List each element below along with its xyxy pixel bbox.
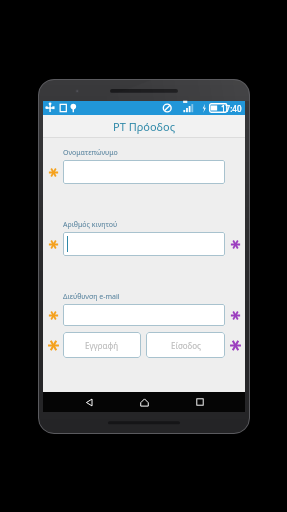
button[interactable] bbox=[63, 160, 225, 184]
button[interactable]: Είσοδος bbox=[146, 332, 225, 358]
button[interactable] bbox=[63, 304, 225, 326]
button[interactable]: Back bbox=[79, 392, 99, 412]
staticText: Αριθμός κινητού bbox=[63, 220, 118, 230]
button[interactable]: Home bbox=[134, 392, 154, 412]
button[interactable] bbox=[63, 232, 225, 256]
other: Validated field bbox=[230, 310, 241, 321]
staticText: Ονοματεπώνυμο bbox=[63, 148, 118, 158]
other: Validated bbox=[229, 339, 242, 352]
other: Required field bbox=[48, 239, 59, 250]
other: Required field bbox=[48, 310, 59, 321]
other: Validated field bbox=[230, 239, 241, 250]
other: Required bbox=[47, 339, 60, 352]
staticText: Διεύθυνση e-mail bbox=[63, 292, 120, 302]
staticText: 17:40 bbox=[221, 103, 242, 114]
staticText: PT Πρόοδος bbox=[113, 119, 176, 134]
button[interactable]: Εγγραφή bbox=[63, 332, 141, 358]
button[interactable]: Recent apps bbox=[190, 392, 210, 412]
staticText: Εγγραφή bbox=[85, 340, 119, 351]
staticText: Είσοδος bbox=[171, 340, 201, 351]
other: Required field bbox=[48, 167, 59, 178]
